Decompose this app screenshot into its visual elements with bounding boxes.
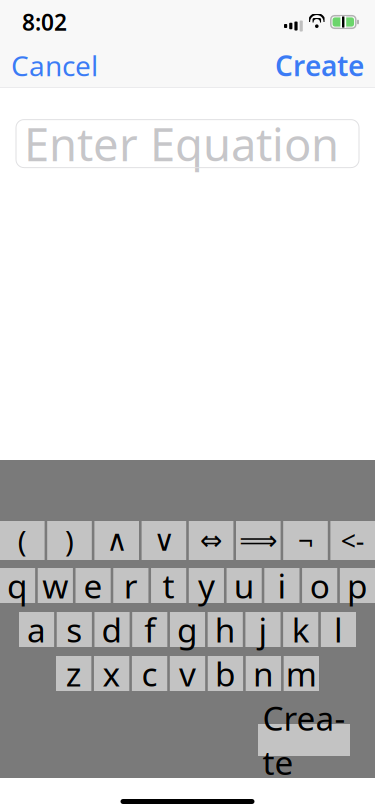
button[interactable]: t <box>151 568 186 603</box>
button[interactable]: z <box>56 656 91 691</box>
button[interactable]: d <box>94 612 130 647</box>
button[interactable]: j <box>245 612 280 647</box>
button[interactable]: q <box>0 568 35 603</box>
staticText: m <box>286 651 317 696</box>
staticText: ⇔ <box>200 525 222 556</box>
staticText: v <box>179 651 196 696</box>
staticText: z <box>66 651 82 696</box>
staticText: x <box>103 651 121 696</box>
staticText: Cancel <box>11 47 98 84</box>
staticText: s <box>66 607 82 652</box>
button[interactable]: u <box>227 568 262 603</box>
button[interactable]: r <box>113 568 148 603</box>
button[interactable]: l <box>321 612 356 647</box>
button[interactable]: ∧ <box>94 521 139 560</box>
button[interactable]: v <box>170 656 205 691</box>
button[interactable]: Enter Equation <box>16 120 359 168</box>
staticText: d <box>101 607 122 652</box>
staticText: a <box>27 607 46 652</box>
button[interactable]: h <box>208 612 243 647</box>
button[interactable]: w <box>38 568 73 603</box>
staticText: g <box>177 607 198 652</box>
button[interactable]: g <box>170 612 205 647</box>
staticText: y <box>198 563 215 608</box>
button[interactable]: ) <box>47 521 92 560</box>
staticText: q <box>7 563 28 608</box>
staticText: f <box>144 607 155 652</box>
staticText: ⟹ <box>239 525 277 556</box>
button[interactable]: ¬ <box>283 521 328 560</box>
staticText: <- <box>341 523 365 558</box>
staticText: p <box>347 563 368 608</box>
staticText: t <box>163 563 175 608</box>
button[interactable]: m <box>284 656 319 691</box>
staticText: n <box>253 651 274 696</box>
button[interactable]: ⇔ <box>189 521 233 560</box>
button[interactable]: b <box>208 656 243 691</box>
staticText: ) <box>65 521 74 560</box>
button[interactable]: s <box>57 612 92 647</box>
button[interactable]: e <box>75 568 111 603</box>
button[interactable]: Create <box>264 40 375 91</box>
button[interactable]: ( <box>0 521 45 560</box>
button[interactable]: i <box>264 568 299 603</box>
button[interactable]: a <box>19 612 54 647</box>
button[interactable]: Create <box>258 724 350 756</box>
button[interactable]: p <box>340 568 375 603</box>
button[interactable]: x <box>94 656 129 691</box>
button[interactable]: ∨ <box>142 521 186 560</box>
button[interactable]: f <box>132 612 167 647</box>
staticText: Create <box>262 696 345 784</box>
staticText: o <box>310 563 330 608</box>
button[interactable]: o <box>302 568 337 603</box>
staticText: h <box>215 607 236 652</box>
button[interactable]: <- <box>330 521 375 560</box>
staticText: c <box>142 651 158 696</box>
staticText: 8:02 <box>22 7 67 37</box>
staticText: ¬ <box>298 523 313 558</box>
staticText: ∧ <box>106 524 127 557</box>
staticText: j <box>258 607 267 652</box>
button[interactable]: k <box>283 612 318 647</box>
staticText: Create <box>275 47 364 84</box>
staticText: b <box>215 651 236 696</box>
staticText: u <box>234 563 255 608</box>
staticText: l <box>334 607 343 652</box>
button[interactable]: ⟹ <box>236 521 281 560</box>
button[interactable]: y <box>189 568 224 603</box>
staticText: w <box>42 563 68 608</box>
button[interactable]: c <box>132 656 167 691</box>
button[interactable]: Cancel <box>0 40 109 91</box>
staticText: i <box>277 563 286 608</box>
staticText: e <box>84 563 103 608</box>
staticText: ∨ <box>153 524 174 557</box>
button[interactable]: n <box>246 656 281 691</box>
staticText: k <box>292 607 310 652</box>
staticText: ( <box>18 521 27 560</box>
staticText: Enter Equation <box>24 113 339 174</box>
staticText: r <box>124 563 138 608</box>
